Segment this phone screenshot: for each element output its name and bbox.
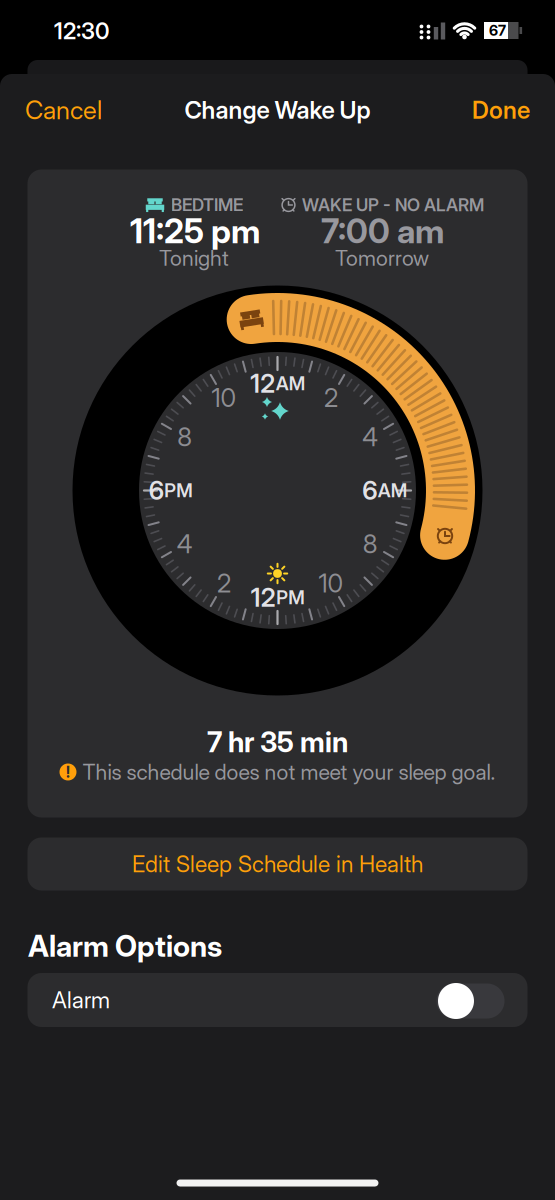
staticText: 6 xyxy=(362,476,377,505)
staticText: This schedule does not meet your sleep g… xyxy=(82,759,495,785)
staticText: 10 xyxy=(318,568,343,598)
staticText: Change Wake Up xyxy=(184,96,370,124)
staticText: Alarm xyxy=(52,987,110,1013)
staticText: 4 xyxy=(362,422,378,452)
staticText: Alarm Options xyxy=(28,929,222,963)
staticText: WAKE UP - NO ALARM xyxy=(302,195,484,215)
staticText: Tomorrow xyxy=(335,245,429,271)
staticText: 8 xyxy=(363,529,378,559)
staticText: 12 xyxy=(250,369,275,398)
staticText: 12 xyxy=(251,583,276,612)
staticText: AM xyxy=(276,372,305,394)
staticText: ! xyxy=(66,763,70,781)
staticText: Edit Sleep Schedule in Health xyxy=(132,851,423,877)
button[interactable]: Cancel xyxy=(25,95,102,125)
staticText: 7 hr 35 min xyxy=(207,725,348,758)
staticText: 6 xyxy=(149,476,164,505)
staticText: 11:25 pm xyxy=(130,211,260,251)
staticText: 67 xyxy=(489,22,506,39)
staticText: 8 xyxy=(177,422,192,452)
staticText: BEDTIME xyxy=(171,195,243,215)
staticText: 12:30 xyxy=(54,18,109,44)
button[interactable]: Alarm xyxy=(436,983,504,1018)
staticText: 4 xyxy=(177,529,193,559)
staticText: Tonight xyxy=(159,245,229,271)
staticText: Cancel xyxy=(25,95,102,125)
staticText: Done xyxy=(472,96,530,124)
staticText: PM xyxy=(164,479,192,501)
button[interactable]: Edit Sleep Schedule in Health xyxy=(27,837,527,890)
staticText: 2 xyxy=(324,383,338,413)
button[interactable]: Done xyxy=(472,96,530,124)
staticText: 10 xyxy=(211,383,236,413)
staticText: PM xyxy=(276,586,304,608)
staticText: 2 xyxy=(217,568,231,598)
staticText: 7:00 am xyxy=(321,211,444,251)
staticText: AM xyxy=(378,479,407,501)
